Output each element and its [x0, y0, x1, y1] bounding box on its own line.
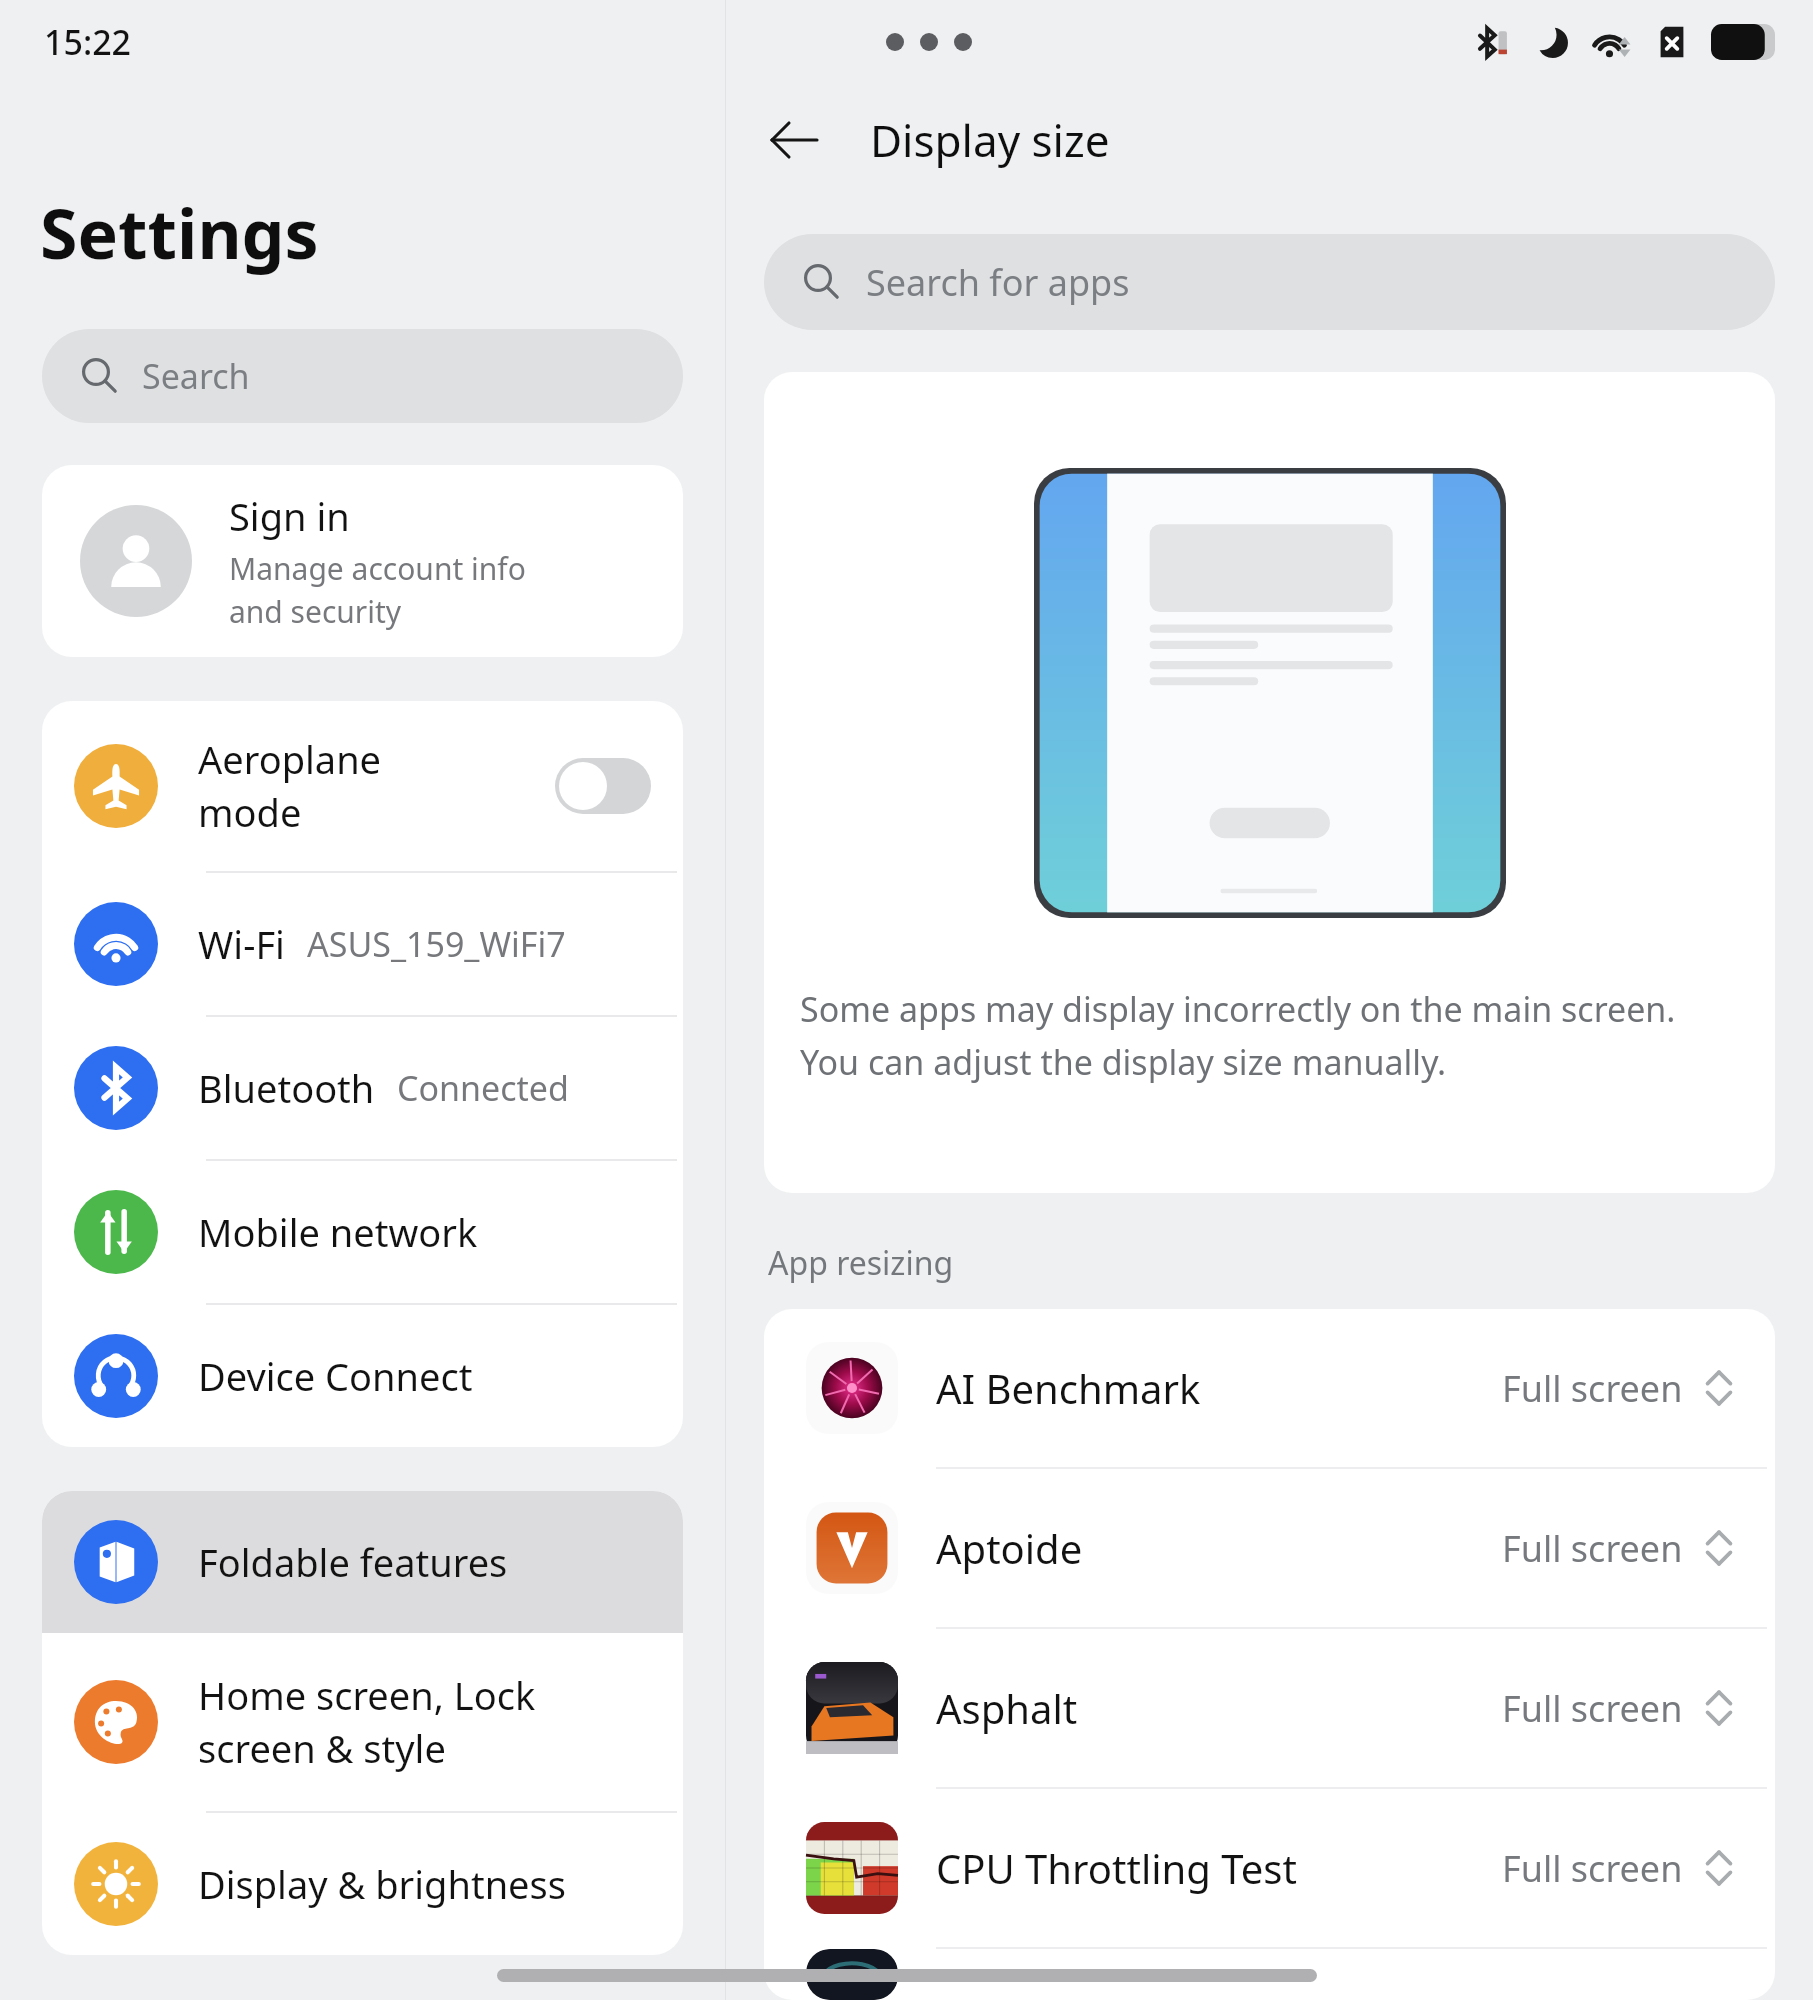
staticText: Display size [870, 110, 1110, 170]
button[interactable]: Asphalt [764, 1629, 1775, 1787]
button[interactable]: Wi-Fi [42, 873, 683, 1015]
staticText: Search [142, 353, 250, 399]
button[interactable]: Home screen, Lock screen & style [42, 1633, 683, 1811]
staticText: Asphalt [936, 1681, 1078, 1735]
staticText: Mobile network [198, 1206, 478, 1258]
staticText: Connected [397, 1065, 569, 1111]
staticText: Some apps may display incorrectly on the… [800, 986, 1739, 1085]
button[interactable] [764, 1949, 1775, 2000]
staticText: Foldable features [198, 1536, 508, 1588]
staticText: 15:22 [44, 19, 132, 65]
staticText: ASUS_159_WiFi7 [307, 921, 566, 967]
button[interactable]: Sign in [42, 465, 683, 657]
button[interactable]: AI Benchmark [764, 1309, 1775, 1467]
staticText: Wi-Fi [198, 918, 285, 970]
staticText: Display & brightness [198, 1858, 566, 1910]
staticText: Manage account info and security [229, 548, 526, 632]
staticText: Device Connect [198, 1350, 473, 1402]
button[interactable]: Aeroplane mode [42, 701, 683, 871]
staticText: Bluetooth [198, 1062, 375, 1114]
button[interactable]: Bluetooth [42, 1017, 683, 1159]
staticText: App resizing [768, 1241, 954, 1285]
button[interactable]: Search for apps [764, 234, 1775, 330]
staticText: Full screen [1502, 1364, 1683, 1413]
staticText: Settings [40, 186, 319, 279]
button[interactable]: Aeroplane mode toggle [555, 758, 651, 814]
staticText: Full screen [1502, 1524, 1683, 1573]
button[interactable]: Back [748, 94, 840, 186]
staticText: AI Benchmark [936, 1361, 1201, 1415]
staticText: Home screen, Lock screen & style [198, 1669, 536, 1775]
button[interactable]: Search [42, 329, 683, 423]
staticText: CPU Throttling Test [936, 1841, 1297, 1895]
button[interactable]: Device Connect [42, 1305, 683, 1447]
staticText: Aeroplane mode [198, 733, 382, 839]
button[interactable]: Aptoide [764, 1469, 1775, 1627]
staticText: Full screen [1502, 1844, 1683, 1893]
staticText: Aptoide [936, 1521, 1083, 1575]
staticText: Search for apps [866, 258, 1130, 307]
staticText: Full screen [1502, 1684, 1683, 1733]
button[interactable]: Mobile network [42, 1161, 683, 1303]
staticText: Sign in [229, 490, 350, 542]
button[interactable]: Display & brightness [42, 1813, 683, 1955]
button[interactable]: Foldable features [42, 1491, 683, 1633]
button[interactable]: CPU Throttling Test [764, 1789, 1775, 1947]
